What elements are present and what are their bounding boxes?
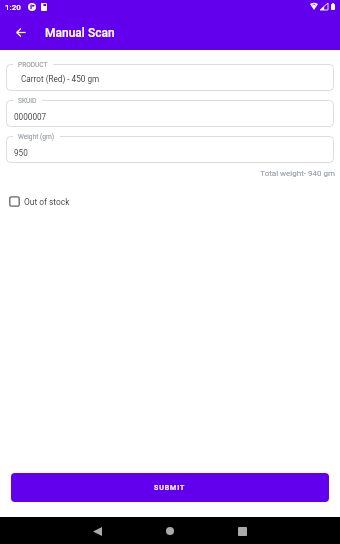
- staticText: 950: [14, 148, 28, 158]
- button[interactable]: SUBMIT: [11, 473, 329, 502]
- staticText: SUBMIT: [154, 484, 186, 492]
- staticText: 0000007: [14, 112, 47, 122]
- staticText: Weight (gm): [18, 133, 55, 141]
- button[interactable]: 950: [6, 136, 334, 163]
- staticText: Total weight- 940 gm: [0, 169, 335, 178]
- button[interactable]: Home: [158, 519, 182, 543]
- staticText: Out of stock: [24, 197, 70, 207]
- button[interactable]: Recents: [230, 519, 254, 543]
- button[interactable]: Back: [85, 519, 109, 543]
- staticText: PRODUCT: [18, 61, 48, 69]
- button[interactable]: Out of stock: [0, 192, 78, 211]
- button[interactable]: Back: [4, 16, 37, 48]
- button[interactable]: 0000007: [6, 100, 334, 127]
- staticText: Carrot (Red) - 450 gm: [21, 74, 100, 84]
- staticText: SKUID: [18, 97, 37, 105]
- button[interactable]: Carrot (Red) - 450 gm: [6, 64, 334, 91]
- staticText: 1:20: [5, 3, 21, 12]
- staticText: Manual Scan: [45, 26, 115, 40]
